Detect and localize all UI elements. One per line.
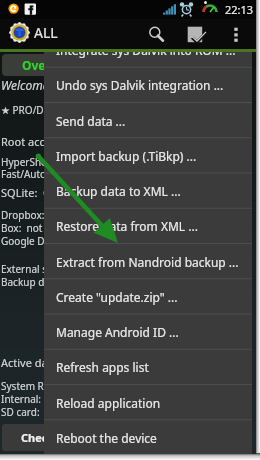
staticText: Google Drive: not linked <box>1 234 117 248</box>
staticText: Undo sys Dalvik integration ... <box>56 77 224 93</box>
button[interactable]: Search <box>143 21 167 45</box>
staticText: HyperShell: active <box>1 155 88 169</box>
button[interactable]: Import backup (.TiBkp) ... <box>44 138 252 173</box>
staticText: Overview <box>22 57 72 73</box>
staticText: Reboot the device <box>56 430 157 446</box>
staticText: Internal: 2.4 GB free <box>1 392 98 406</box>
button[interactable]: Send data ... <box>44 103 252 138</box>
staticText: Box: not linked <box>1 221 74 235</box>
button[interactable]: Batch actions <box>184 21 208 45</box>
staticText: Fast/Auto mode: ON <box>1 167 100 181</box>
staticText: Dropbox: not linked <box>1 208 97 222</box>
staticText: Welcome to Titanium Backup! <box>1 77 159 93</box>
button[interactable]: Undo sys Dalvik integration ... <box>44 67 252 102</box>
button[interactable]: Check <box>2 424 74 451</box>
staticText: Restore data from XML ... <box>56 218 198 234</box>
button[interactable]: Reload application <box>44 385 252 420</box>
button[interactable]: Overview <box>2 54 72 76</box>
staticText: Manage Android ID ... <box>56 324 179 340</box>
button[interactable]: Extract from Nandroid backup ... <box>44 244 252 279</box>
button[interactable]: ALL <box>10 21 58 44</box>
button[interactable]: More options <box>226 21 246 41</box>
staticText: System ROM: 4.1.2 <box>1 379 92 393</box>
button[interactable]: Create "update.zip" ... <box>44 279 252 314</box>
button[interactable]: Backup data to XML ... <box>44 173 252 208</box>
staticText: Active data: 120 apps <box>1 355 114 370</box>
staticText: Root access: OK <box>1 134 86 149</box>
staticText: Integrate sys Dalvik into ROM ... <box>56 42 236 58</box>
staticText: Reload application <box>56 395 161 411</box>
button[interactable]: Restore data from XML ... <box>44 208 252 243</box>
staticText: Backup data to XML ... <box>56 183 181 199</box>
staticText: SQLite: OK <box>1 185 59 200</box>
button[interactable]: Reboot the device <box>44 420 252 455</box>
staticText: ALL <box>34 23 58 42</box>
staticText: ★ PRO/Donate key: not found <box>1 103 141 117</box>
staticText: Refresh apps list <box>56 359 149 375</box>
button[interactable]: Integrate sys Dalvik into ROM ... <box>44 32 252 67</box>
staticText: Send data ... <box>56 113 126 129</box>
staticText: Import backup (.TiBkp) ... <box>56 148 197 164</box>
staticText: Create "update.zip" ... <box>56 289 178 305</box>
button[interactable]: Refresh apps list <box>44 349 252 384</box>
staticText: External storage: OK <box>1 262 100 276</box>
staticText: 22:13 <box>225 2 254 17</box>
staticText: Backup directory: OK <box>1 275 103 289</box>
staticText: SD card: 6.1 GB free <box>1 405 97 419</box>
button[interactable]: Manage Android ID ... <box>44 314 252 349</box>
staticText: Check <box>21 430 55 445</box>
staticText: Extract from Nandroid backup ... <box>56 254 239 270</box>
